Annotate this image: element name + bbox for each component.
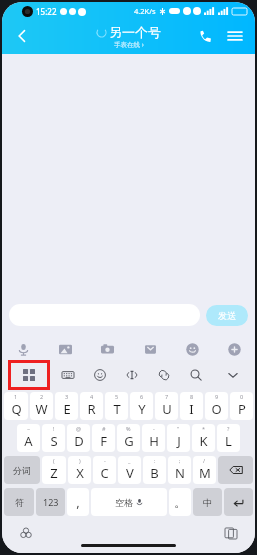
staticText: N <box>175 464 185 482</box>
button[interactable]: Voice <box>12 338 34 360</box>
staticText: ? <box>227 425 230 432</box>
button[interactable]: ; <box>168 456 191 484</box>
button[interactable]: , <box>67 488 89 516</box>
button[interactable]: 中 <box>193 488 222 516</box>
button[interactable]: Search <box>184 363 208 387</box>
button[interactable]: 发送 <box>206 305 248 326</box>
staticText: P <box>238 400 246 418</box>
staticText: 发送 <box>218 310 236 321</box>
button[interactable]: " <box>167 424 190 452</box>
button[interactable]: 空格 <box>91 488 167 516</box>
button[interactable]: 0 <box>230 392 253 420</box>
staticText: ! <box>53 425 55 432</box>
staticText: 另一个号 <box>109 24 161 40</box>
button[interactable]: _ <box>118 456 141 484</box>
staticText: # <box>102 425 106 432</box>
button[interactable]: / <box>193 456 216 484</box>
staticText: K <box>199 432 208 450</box>
button[interactable]: Keyboard <box>56 363 80 387</box>
button[interactable]: Emoji <box>88 363 112 387</box>
staticText: F <box>100 432 107 450</box>
staticText: / <box>203 457 206 464</box>
button[interactable]: ! <box>42 424 65 452</box>
staticText: 4 <box>90 393 94 400</box>
staticText: H <box>149 432 159 450</box>
button[interactable]: 分词 <box>4 456 40 484</box>
button[interactable]: % <box>117 424 140 452</box>
staticText: ) <box>79 457 81 464</box>
button[interactable]: Backspace <box>218 456 253 484</box>
button[interactable]: Back <box>8 22 36 50</box>
button[interactable]: Call <box>193 24 217 48</box>
button[interactable]: * <box>192 424 215 452</box>
button[interactable]: Cursor <box>120 363 144 387</box>
staticText: Z <box>50 464 58 482</box>
button[interactable]: : <box>143 456 166 484</box>
button[interactable]: Hide keyboard <box>221 363 245 387</box>
button[interactable]: 2 <box>30 392 53 420</box>
button[interactable]: Card <box>139 338 161 360</box>
staticText: " <box>177 425 180 432</box>
button[interactable]: 6 <box>130 392 153 420</box>
button[interactable]: Attach <box>152 363 176 387</box>
staticText: 3 <box>65 393 69 400</box>
button[interactable]: 4 <box>80 392 103 420</box>
staticText: 符 <box>15 497 24 508</box>
button[interactable]: Menu <box>223 24 247 48</box>
staticText: M <box>199 464 211 482</box>
staticText: _ <box>128 457 131 464</box>
staticText: 123 <box>43 496 59 508</box>
staticText: 7 <box>165 393 169 400</box>
staticText: R <box>87 400 96 418</box>
staticText: C <box>100 464 109 482</box>
button[interactable]: Input method <box>16 523 36 543</box>
staticText: A <box>24 432 33 450</box>
button[interactable]: - <box>93 456 116 484</box>
button[interactable]: Gallery <box>54 338 76 360</box>
staticText: ( <box>53 457 55 464</box>
staticText: 6 <box>140 393 144 400</box>
button[interactable]: 8 <box>180 392 203 420</box>
staticText: Y <box>138 400 146 418</box>
button[interactable]: # <box>92 424 115 452</box>
button[interactable]: ? <box>217 424 240 452</box>
button[interactable]: Keyboard layouts <box>11 363 47 387</box>
staticText: 0 <box>240 393 244 400</box>
button[interactable]: 符 <box>4 488 34 516</box>
button[interactable]: 3 <box>55 392 78 420</box>
staticText: I <box>189 400 194 418</box>
staticText: E <box>63 400 71 418</box>
button[interactable]: - <box>142 424 165 452</box>
button[interactable]: ) <box>68 456 91 484</box>
button[interactable]: Enter <box>224 488 253 516</box>
staticText: 9 <box>215 393 219 400</box>
button[interactable]: ~ <box>17 424 40 452</box>
button[interactable]: Clipboard <box>221 523 241 543</box>
staticText: T <box>113 400 121 418</box>
button[interactable]: 5 <box>105 392 128 420</box>
staticText: 手表在线 › <box>114 40 144 49</box>
button[interactable]: 。 <box>169 488 191 516</box>
staticText: @ <box>76 425 81 432</box>
button[interactable]: Emoji <box>181 338 203 360</box>
button[interactable]: @ <box>67 424 90 452</box>
staticText: Q <box>11 400 22 418</box>
staticText: 中 <box>203 497 212 508</box>
staticText: U <box>162 400 172 418</box>
button[interactable]: 9 <box>205 392 228 420</box>
staticText: O <box>211 400 222 418</box>
staticText: G <box>124 432 134 450</box>
button[interactable]: ( <box>42 456 66 484</box>
staticText: 空格 <box>115 497 133 508</box>
staticText: , <box>76 493 80 511</box>
button[interactable]: 7 <box>155 392 178 420</box>
button[interactable]: 123 <box>36 488 65 516</box>
button[interactable]: 1 <box>4 392 28 420</box>
staticText: 5 <box>115 393 119 400</box>
button[interactable]: More <box>223 338 245 360</box>
staticText: * <box>202 425 206 432</box>
button[interactable]: Camera <box>96 338 118 360</box>
staticText: : <box>154 457 156 464</box>
staticText: 1 <box>14 393 18 400</box>
